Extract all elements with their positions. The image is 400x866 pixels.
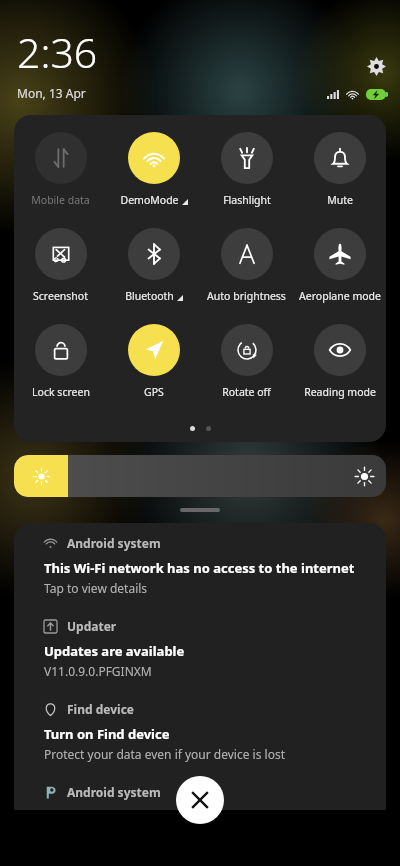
staticText: GPS [144,385,164,399]
staticText: This Wi-Fi network has no access to the … [44,559,355,577]
staticText: Auto brightness [207,289,286,303]
staticText: V11.0.9.0.PFGINXM [44,663,152,679]
staticText: Mute [327,193,353,207]
staticText: Lock screen [32,385,90,399]
staticText: 2:36 [17,24,98,80]
button[interactable]: Clear all notifications [176,776,224,824]
staticText: Reading mode [304,385,376,399]
staticText: Flashlight [223,193,271,207]
button[interactable]: Reading mode [293,319,386,415]
button[interactable]: Rotate off [200,319,293,415]
button[interactable]: Find device [14,689,386,772]
staticText: Android system [67,535,161,551]
button[interactable]: DemoMode [107,127,200,223]
button[interactable]: Bluetooth [107,223,200,319]
staticText: Rotate off [222,385,271,399]
staticText: Updates are available [44,642,185,660]
staticText: Bluetooth [125,289,174,303]
button[interactable]: Aeroplane mode [293,223,386,319]
staticText: Updater [67,618,117,634]
staticText: Aeroplane mode [299,289,381,303]
button[interactable]: Brightness [14,455,386,497]
staticText: Android system [67,784,161,800]
staticText: Screenshot [33,289,88,303]
staticText: Mon, 13 Apr [17,85,86,101]
button[interactable]: Auto brightness [200,223,293,319]
staticText: Find device [67,701,134,717]
button[interactable]: Screenshot [14,223,107,319]
button[interactable]: Lock screen [14,319,107,415]
staticText: Mobile data [31,193,90,207]
button[interactable]: Settings [360,50,392,82]
staticText: Tap to view details [44,580,148,596]
button[interactable]: Mute [293,127,386,223]
staticText: Protect your data even if your device is… [44,746,286,762]
button[interactable]: GPS [107,319,200,415]
staticText: Turn on Find device [44,725,170,743]
button[interactable]: Android system [14,523,386,606]
staticText: DemoMode [120,193,179,207]
button[interactable]: Mobile data [14,127,107,223]
button[interactable]: Updater [14,606,386,689]
button[interactable]: Android system [14,772,386,810]
button[interactable]: Flashlight [200,127,293,223]
